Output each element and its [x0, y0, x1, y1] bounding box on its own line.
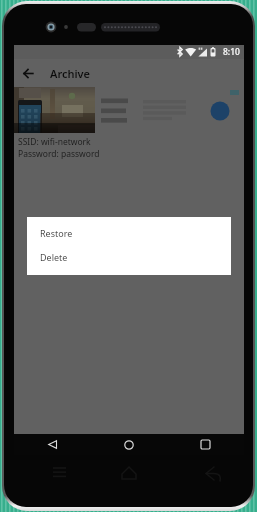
staticText: SSID: wifi-network — [18, 136, 91, 148]
staticText: Delete — [40, 251, 68, 263]
button[interactable]: Delete — [27, 245, 231, 269]
button[interactable] — [14, 87, 244, 133]
staticText: 8:10 — [223, 46, 240, 58]
button[interactable]: Restore — [27, 221, 231, 245]
button[interactable]: Recents — [167, 434, 244, 455]
staticText: Password: password — [18, 148, 100, 160]
button[interactable]: Back — [14, 59, 42, 87]
staticText: Restore — [40, 227, 73, 239]
staticText: Archive — [50, 66, 91, 81]
button[interactable]: Home — [90, 434, 167, 455]
button[interactable]: Back — [14, 434, 90, 455]
